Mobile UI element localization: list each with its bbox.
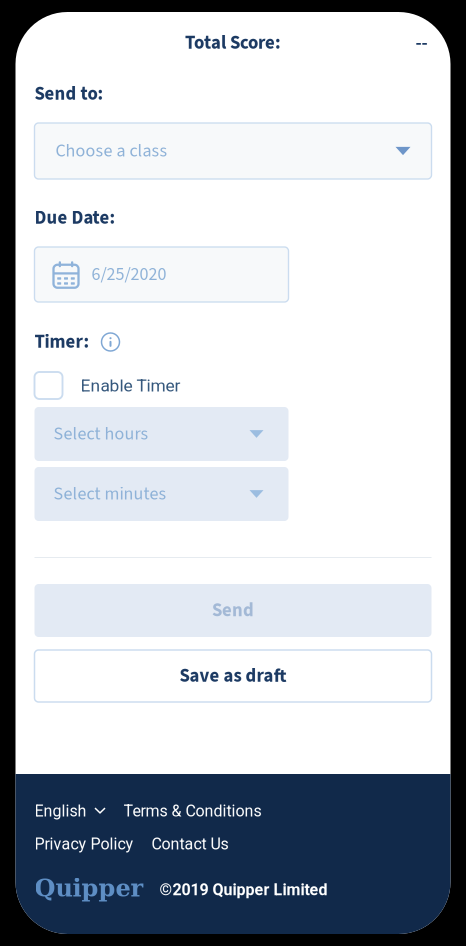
button[interactable]: Select hours: [34, 407, 288, 461]
staticText: Terms & Conditions: [123, 802, 261, 820]
button[interactable]: Save as draft: [34, 650, 431, 702]
button[interactable]: Terms & Conditions: [123, 802, 261, 820]
staticText: Total Score:: [185, 30, 281, 56]
staticText: Timer:: [34, 329, 89, 355]
button[interactable]: Contact Us: [151, 835, 228, 853]
button[interactable]: Send: [34, 584, 431, 637]
button[interactable]: Choose a class: [34, 123, 431, 179]
staticText: English: [34, 802, 86, 820]
staticText: Contact Us: [151, 835, 228, 853]
button[interactable]: --: [415, 29, 427, 57]
staticText: Send to:: [34, 81, 103, 107]
button[interactable]: Select minutes: [34, 467, 288, 521]
staticText: Choose a class: [55, 138, 167, 164]
staticText: --: [415, 30, 427, 56]
staticText: Send: [212, 597, 254, 624]
button[interactable]: Timer help: [101, 333, 119, 351]
button[interactable]: Enable Timer: [34, 372, 288, 399]
button[interactable]: Privacy Policy: [34, 835, 133, 853]
staticText: Select minutes: [53, 481, 166, 507]
button[interactable]: 6/25/2020: [34, 247, 288, 302]
staticText: Enable Timer: [80, 375, 180, 396]
button[interactable]: English: [34, 802, 105, 820]
staticText: Privacy Policy: [34, 835, 133, 853]
staticText: Quipper: [34, 874, 143, 902]
staticText: Select hours: [53, 421, 148, 447]
staticText: Save as draft: [179, 663, 286, 689]
staticText: 6/25/2020: [91, 262, 166, 287]
staticText: Due Date:: [34, 205, 115, 231]
staticText: ©2019 Quipper Limited: [159, 880, 327, 899]
